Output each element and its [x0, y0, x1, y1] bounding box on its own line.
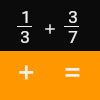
staticText: 1 [21, 7, 31, 27]
staticText: 7 [68, 27, 78, 47]
button[interactable]: Equals [50, 51, 100, 100]
button[interactable]: Plus [0, 51, 50, 100]
staticText: 3 [20, 27, 30, 47]
staticText: 3 [68, 7, 78, 27]
